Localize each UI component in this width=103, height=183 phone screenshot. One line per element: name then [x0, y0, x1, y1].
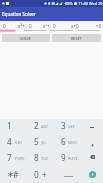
button[interactable]: # [10, 168, 22, 180]
button[interactable]: 3 [57, 119, 69, 131]
staticText: SOLVE [20, 36, 32, 41]
button[interactable]: 9 [57, 151, 69, 163]
button[interactable]: Enter [85, 167, 99, 181]
button[interactable]: Backspace [85, 151, 99, 165]
staticText: GHI [15, 140, 22, 145]
staticText: TUV [41, 156, 49, 161]
button[interactable]: Space [60, 168, 76, 183]
staticText: DEF [68, 124, 75, 129]
button[interactable]: ∗ [4, 168, 16, 180]
staticText: 6 [61, 136, 66, 147]
button[interactable]: SOLVE [2, 34, 50, 42]
staticText: 0 [53, 23, 56, 29]
staticText: JKL [41, 140, 47, 145]
staticText: x²+ [43, 23, 50, 29]
staticText: ∗ [7, 169, 14, 179]
button[interactable]: 5 [30, 135, 42, 147]
staticText: PQRS [15, 156, 25, 161]
staticText: 3 [61, 120, 66, 131]
staticText: x+ [71, 23, 77, 29]
button[interactable]: Minus [85, 119, 99, 133]
button[interactable]: Comma [85, 135, 99, 149]
staticText: + [42, 169, 47, 180]
staticText: Equation Solver [2, 11, 36, 17]
button[interactable]: + [38, 168, 50, 180]
button[interactable]: 7 [3, 151, 15, 163]
button[interactable]: 0 [30, 168, 42, 180]
staticText: 7 [7, 152, 12, 163]
staticText: RESET [71, 36, 82, 41]
button[interactable]: RESET [52, 34, 101, 42]
staticText: 4 [7, 136, 12, 147]
staticText: MNO [68, 140, 78, 145]
staticText: WXYZ [68, 156, 78, 161]
staticText: 1 [7, 120, 12, 131]
staticText: x³+ [18, 23, 25, 29]
staticText: 0 [34, 169, 39, 180]
staticText: 0 [3, 23, 6, 29]
staticText: 11:40 Wed 29 [78, 1, 103, 6]
button[interactable]: 6 [57, 135, 69, 147]
staticText: =0 [96, 23, 102, 29]
staticText: 0 [76, 23, 79, 29]
staticText: ·88% [64, 1, 73, 6]
button[interactable]: 8 [30, 151, 42, 163]
button[interactable]: 1 [3, 119, 15, 131]
staticText: 2 [34, 120, 39, 131]
staticText: 9 [61, 152, 66, 163]
button[interactable]: 2 [30, 119, 42, 131]
staticText: 5 [34, 136, 39, 147]
staticText: 0 [29, 23, 32, 29]
button[interactable]: 4 [3, 135, 15, 147]
staticText: ABC [41, 124, 49, 129]
staticText: # [13, 169, 19, 180]
staticText: 8 [34, 152, 39, 163]
